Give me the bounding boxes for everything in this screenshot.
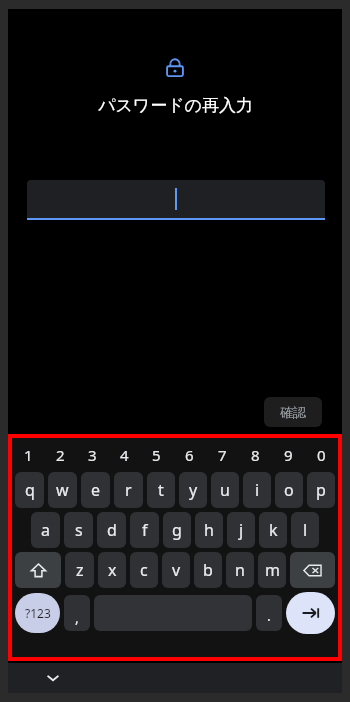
- staticText: u: [220, 479, 230, 501]
- button[interactable]: [27, 180, 325, 218]
- button[interactable]: 6: [173, 441, 206, 469]
- staticText: w: [56, 479, 69, 501]
- button[interactable]: ,: [64, 595, 90, 631]
- button[interactable]: z: [65, 552, 94, 588]
- staticText: 1: [24, 445, 33, 465]
- staticText: 3: [88, 445, 97, 465]
- staticText: c: [140, 559, 148, 581]
- button[interactable]: a: [31, 512, 60, 548]
- staticText: z: [76, 559, 84, 581]
- staticText: r: [125, 479, 132, 501]
- staticText: 0: [317, 445, 326, 465]
- button[interactable]: s: [64, 512, 93, 548]
- button[interactable]: k: [259, 512, 287, 548]
- staticText: j: [239, 519, 244, 541]
- staticText: d: [107, 519, 117, 541]
- button[interactable]: Shift: [15, 552, 61, 588]
- staticText: k: [269, 519, 278, 541]
- staticText: y: [189, 479, 198, 501]
- staticText: f: [142, 519, 148, 541]
- staticText: 7: [218, 445, 227, 465]
- button[interactable]: 1: [12, 441, 44, 469]
- staticText: s: [75, 519, 83, 541]
- other: Locked: [162, 55, 188, 81]
- staticText: ?123: [25, 605, 51, 621]
- staticText: パスワードの再入力: [98, 95, 253, 116]
- staticText: x: [108, 559, 117, 581]
- staticText: .: [267, 606, 271, 625]
- staticText: h: [204, 519, 214, 541]
- button[interactable]: p: [307, 472, 335, 508]
- staticText: 6: [185, 445, 194, 465]
- staticText: a: [41, 519, 50, 541]
- button[interactable]: d: [97, 512, 126, 548]
- staticText: l: [303, 519, 308, 541]
- button[interactable]: u: [211, 472, 239, 508]
- button[interactable]: n: [226, 552, 254, 588]
- button[interactable]: 7: [206, 441, 239, 469]
- button[interactable]: 4: [108, 441, 140, 469]
- staticText: 2: [56, 445, 65, 465]
- button[interactable]: v: [162, 552, 190, 588]
- button[interactable]: c: [130, 552, 158, 588]
- button[interactable]: 確認: [264, 397, 322, 427]
- button[interactable]: o: [275, 472, 303, 508]
- button[interactable]: Backspace: [290, 552, 335, 588]
- button[interactable]: ?123: [15, 593, 60, 633]
- button[interactable]: w: [48, 472, 77, 508]
- button[interactable]: Hide keyboard: [44, 669, 62, 687]
- staticText: v: [172, 559, 181, 581]
- button[interactable]: Enter: [286, 592, 335, 634]
- staticText: g: [172, 519, 182, 541]
- button[interactable]: m: [258, 552, 286, 588]
- button[interactable]: f: [130, 512, 159, 548]
- button[interactable]: g: [163, 512, 191, 548]
- button[interactable]: x: [98, 552, 126, 588]
- staticText: 4: [120, 445, 129, 465]
- button[interactable]: 2: [44, 441, 76, 469]
- button[interactable]: q: [15, 472, 44, 508]
- staticText: p: [316, 479, 326, 501]
- staticText: q: [25, 479, 35, 501]
- button[interactable]: l: [291, 512, 319, 548]
- button[interactable]: r: [114, 472, 143, 508]
- button[interactable]: i: [243, 472, 271, 508]
- button[interactable]: 9: [272, 441, 305, 469]
- button[interactable]: b: [194, 552, 222, 588]
- button[interactable]: 8: [239, 441, 272, 469]
- button[interactable]: 5: [140, 441, 173, 469]
- staticText: n: [235, 559, 245, 581]
- staticText: t: [158, 479, 164, 501]
- button[interactable]: h: [195, 512, 223, 548]
- button[interactable]: y: [179, 472, 207, 508]
- staticText: 8: [251, 445, 260, 465]
- staticText: ,: [75, 608, 79, 627]
- button[interactable]: t: [147, 472, 175, 508]
- staticText: o: [284, 479, 294, 501]
- staticText: 9: [284, 445, 293, 465]
- staticText: m: [265, 559, 280, 581]
- button[interactable]: 3: [76, 441, 108, 469]
- button[interactable]: 0: [305, 441, 338, 469]
- button[interactable]: j: [227, 512, 255, 548]
- staticText: 確認: [280, 404, 306, 420]
- staticText: 5: [152, 445, 161, 465]
- button[interactable]: .: [256, 595, 282, 631]
- button[interactable]: e: [81, 472, 110, 508]
- staticText: i: [255, 479, 260, 501]
- staticText: e: [91, 479, 101, 501]
- staticText: b: [203, 559, 213, 581]
